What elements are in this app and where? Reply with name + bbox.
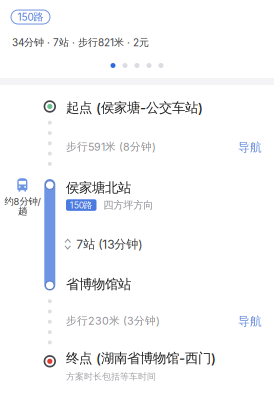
staticText: 34分钟 · 7站 · 步行821米 · 2元 [12,36,149,49]
staticText: 150路 [17,11,43,23]
staticText: 四方坪方向 [103,199,153,211]
staticText: 导航 [238,140,262,155]
staticText: 步行230米 (3分钟) [66,314,160,327]
staticText: 侯家塘北站 [66,179,131,196]
staticText: 终点 (湖南省博物馆-西门) [66,350,216,367]
staticText: 省博物馆站 [66,276,131,293]
staticText: 步行591米 (8分钟) [66,140,156,153]
button[interactable]: 导航 [238,140,262,155]
button[interactable]: 导航 [238,314,262,329]
staticText: 150路 [70,200,93,210]
staticText: 趟 [18,205,27,217]
staticText: 方案时长包括等车时间 [66,371,156,382]
staticText: 起点 (侯家塘-公交车站) [66,99,203,116]
staticText: 导航 [238,314,262,329]
staticText: 约8分钟/ [4,195,40,207]
button[interactable]: 150路 [11,10,50,24]
staticText: 7站 (13分钟) [76,237,142,252]
